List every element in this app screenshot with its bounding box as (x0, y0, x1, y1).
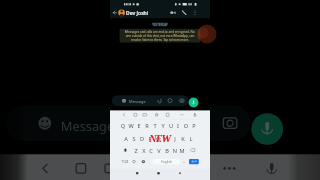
staticText: W (127, 122, 135, 130)
staticText: Message (129, 99, 146, 104)
staticText: T (151, 122, 159, 130)
staticText: YESTERDAY (110, 23, 210, 27)
staticText: L (187, 135, 195, 143)
staticText: G (154, 135, 162, 143)
staticText: I (174, 122, 182, 130)
staticText: O (182, 122, 190, 130)
staticText: X (140, 147, 148, 155)
staticText: H (162, 135, 170, 143)
staticText: Q (119, 122, 127, 130)
staticText: D (138, 135, 146, 143)
staticText: ?123 (119, 160, 131, 164)
staticText: Y (159, 122, 167, 130)
staticText: Dev Joshi (126, 10, 149, 17)
staticText: English (153, 160, 180, 164)
staticText: P (190, 122, 198, 130)
staticText: A (122, 135, 130, 143)
staticText: K (179, 135, 187, 143)
staticText: E (135, 122, 143, 130)
staticText: Message (61, 118, 115, 134)
staticText: R (143, 122, 151, 130)
staticText: F (146, 135, 154, 143)
staticText: U (167, 122, 175, 130)
staticText: M (178, 147, 186, 155)
staticText: B (163, 147, 171, 155)
staticText: Messages and calls are end-to-end encryp… (123, 30, 197, 42)
staticText: V (155, 147, 163, 155)
staticText: S (130, 135, 138, 143)
staticText: N (171, 147, 179, 155)
staticText: C (147, 147, 155, 155)
staticText: J (171, 135, 179, 143)
staticText: NEW (149, 133, 171, 145)
staticText: Z (132, 147, 140, 155)
